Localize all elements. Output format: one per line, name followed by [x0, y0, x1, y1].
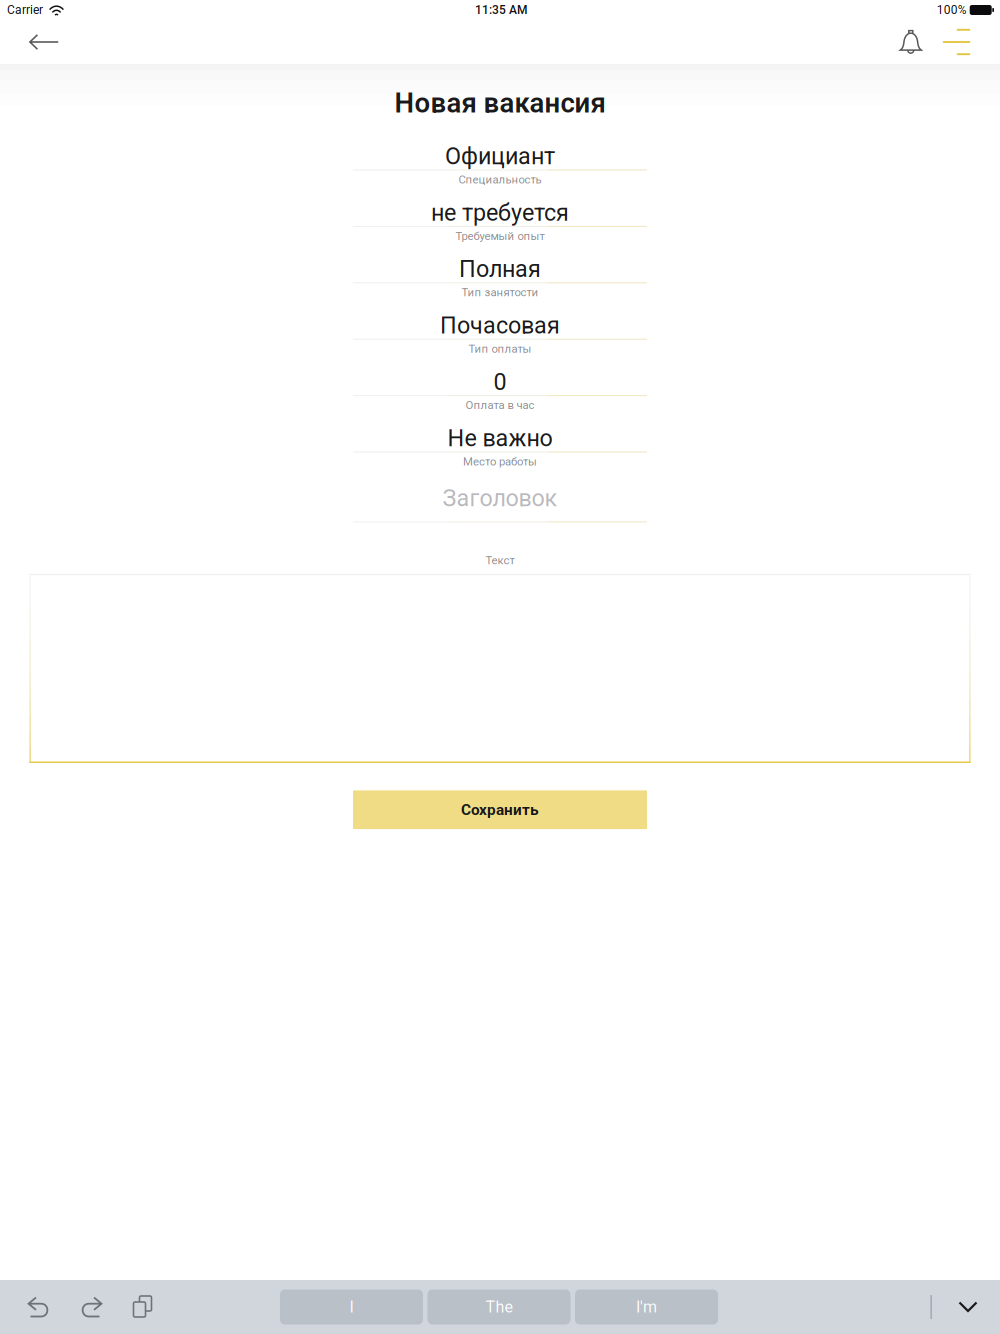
button[interactable]: Hide keyboard: [952, 1282, 984, 1332]
button[interactable]: Официант: [353, 136, 647, 193]
button[interactable]: Menu: [943, 20, 970, 64]
staticText: Требуемый опыт: [455, 229, 544, 243]
staticText: 100%: [937, 3, 967, 17]
button[interactable]: Полная: [353, 249, 647, 306]
button[interactable]: I'm: [575, 1289, 718, 1324]
button[interactable]: The: [427, 1289, 570, 1324]
staticText: не требуется: [431, 199, 569, 226]
button[interactable]: [29, 574, 970, 763]
staticText: Почасовая: [440, 312, 560, 339]
staticText: Оплата в час: [465, 399, 534, 412]
button[interactable]: Заголовок: [353, 475, 647, 522]
button[interactable]: Undo: [19, 1282, 59, 1332]
button[interactable]: Сохранить: [353, 790, 647, 829]
staticText: 0: [493, 368, 506, 396]
button[interactable]: 0: [353, 362, 647, 418]
staticText: Заголовок: [442, 484, 557, 512]
button[interactable]: Paste: [124, 1282, 163, 1332]
staticText: Специальность: [458, 173, 541, 186]
staticText: Тип занятости: [461, 286, 538, 299]
button[interactable]: не требуется: [353, 193, 647, 249]
staticText: Текст: [485, 554, 514, 567]
staticText: The: [485, 1298, 512, 1316]
staticText: Полная: [459, 255, 541, 283]
button[interactable]: Почасовая: [353, 306, 647, 362]
staticText: I: [349, 1298, 353, 1316]
button[interactable]: Notifications: [889, 20, 933, 64]
staticText: Сохранить: [461, 801, 539, 819]
staticText: Место работы: [463, 455, 537, 468]
staticText: Тип оплаты: [468, 342, 531, 355]
button[interactable]: Back: [0, 20, 59, 64]
staticText: Официант: [445, 143, 555, 170]
staticText: Не важно: [447, 425, 552, 452]
button[interactable]: Redo: [71, 1282, 111, 1332]
staticText: Carrier: [7, 3, 43, 17]
staticText: Новая вакансия: [394, 87, 605, 119]
staticText: I'm: [636, 1298, 657, 1316]
button[interactable]: I: [280, 1289, 423, 1324]
staticText: 11:35 AM: [475, 3, 527, 17]
button[interactable]: Не важно: [353, 418, 647, 475]
